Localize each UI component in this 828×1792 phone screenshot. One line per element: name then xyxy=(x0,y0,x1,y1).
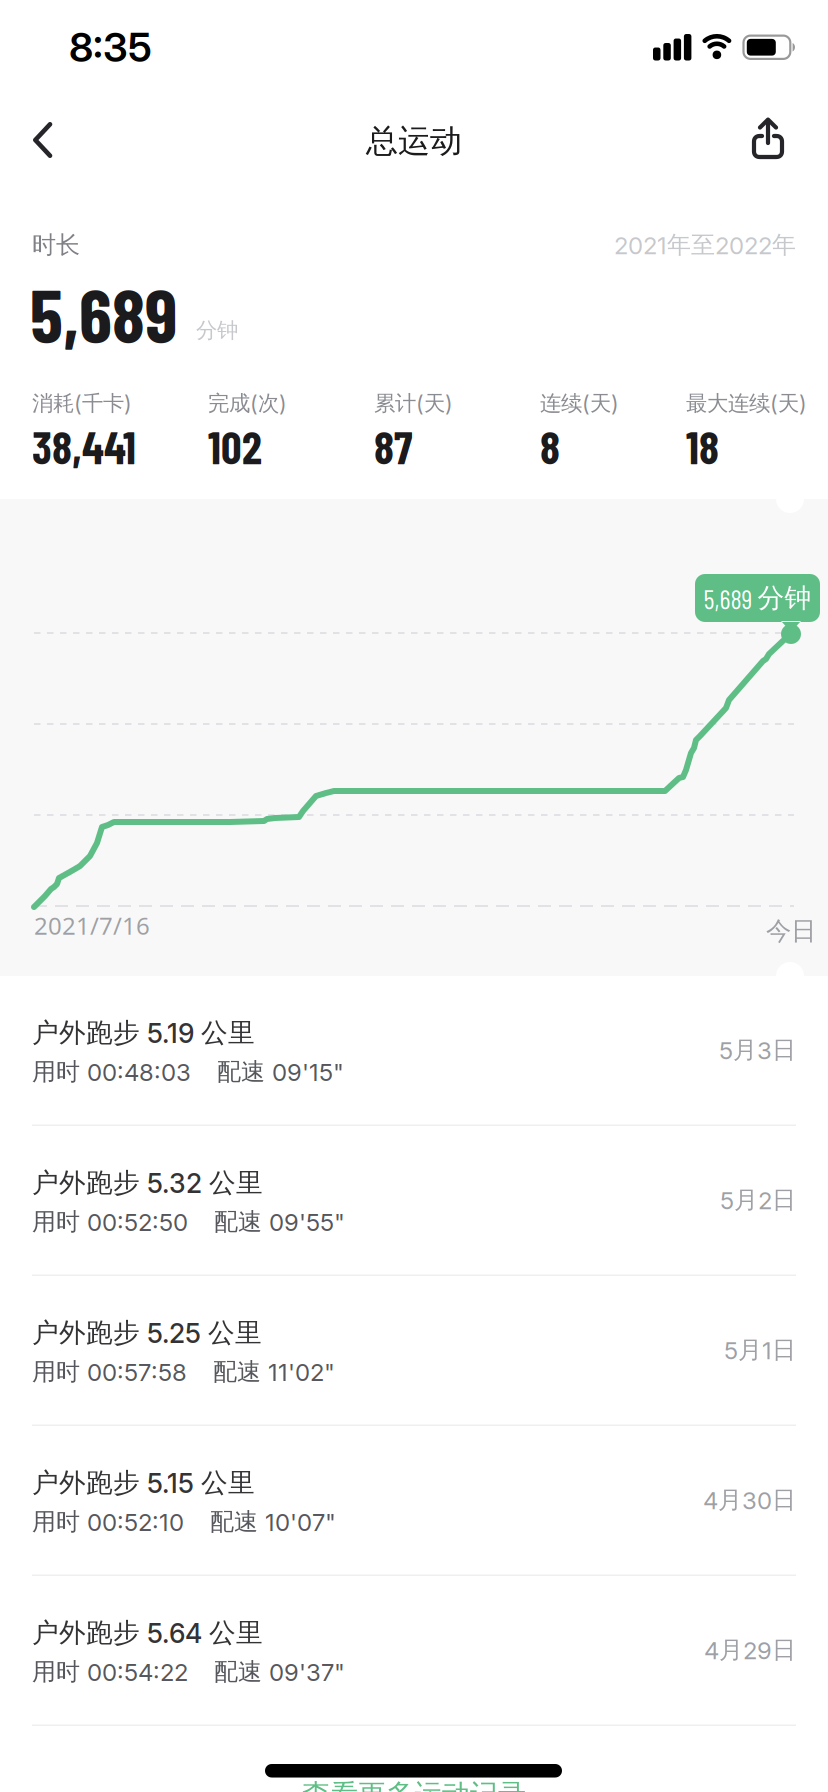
button[interactable]: 查看更多运动记录 xyxy=(264,1777,564,1792)
button[interactable]: 户外跑步 5.15 公里 xyxy=(0,1426,828,1576)
button[interactable]: 户外跑步 5.19 公里 xyxy=(0,976,828,1126)
button[interactable]: 户外跑步 5.32 公里 xyxy=(0,1126,828,1276)
staticText: 4月30日 xyxy=(703,1485,796,1515)
staticText: 连续(天) xyxy=(540,390,619,417)
staticText: 5月3日 xyxy=(719,1035,796,1065)
staticText: 用时 00:52:50 xyxy=(32,1207,188,1237)
staticText: 2021年至2022年 xyxy=(614,230,796,260)
staticText: 时长 xyxy=(32,230,80,260)
staticText: 8 xyxy=(540,419,560,473)
staticText: 用时 00:48:03 xyxy=(32,1057,191,1087)
staticText: 今日 xyxy=(766,915,816,947)
staticText: 用时 00:52:10 xyxy=(32,1507,184,1537)
staticText: 用时 00:57:58 xyxy=(32,1357,187,1387)
staticText: 配速 10'07" xyxy=(210,1507,336,1537)
staticText: 4月29日 xyxy=(704,1635,796,1665)
staticText: 户外跑步 5.19 公里 xyxy=(32,1016,255,1050)
staticText: 5,689 分钟 xyxy=(703,581,811,615)
staticText: 配速 09'55" xyxy=(214,1207,345,1237)
staticText: 户外跑步 5.25 公里 xyxy=(32,1316,262,1350)
button[interactable]: Share xyxy=(740,106,796,171)
staticText: 分钟 xyxy=(196,317,238,344)
staticText: 8:35 xyxy=(69,23,152,71)
staticText: 户外跑步 5.15 公里 xyxy=(32,1466,255,1500)
staticText: 配速 09'37" xyxy=(214,1657,345,1687)
staticText: 用时 00:54:22 xyxy=(32,1657,188,1687)
staticText: 配速 11'02" xyxy=(213,1357,335,1387)
staticText: 总运动 xyxy=(366,121,462,161)
staticText: 查看更多运动记录 xyxy=(302,1777,526,1792)
staticText: 户外跑步 5.64 公里 xyxy=(32,1616,263,1650)
staticText: 消耗(千卡) xyxy=(32,390,132,417)
staticText: 完成(次) xyxy=(208,390,287,417)
staticText: 5,689 xyxy=(30,268,177,358)
staticText: 18 xyxy=(686,419,719,473)
staticText: 102 xyxy=(208,419,262,473)
staticText: 5月1日 xyxy=(724,1335,796,1365)
staticText: 38,441 xyxy=(32,419,136,473)
staticText: 最大连续(天) xyxy=(686,390,807,417)
staticText: 累计(天) xyxy=(374,390,453,417)
staticText: 5月2日 xyxy=(720,1185,796,1215)
button[interactable]: Back xyxy=(19,108,66,172)
button[interactable]: 户外跑步 5.64 公里 xyxy=(0,1576,828,1726)
staticText: 87 xyxy=(374,419,412,473)
staticText: 2021/7/16 xyxy=(34,909,150,942)
staticText: 户外跑步 5.32 公里 xyxy=(32,1166,263,1200)
staticText: 配速 09'15" xyxy=(217,1057,344,1087)
button[interactable]: 户外跑步 5.25 公里 xyxy=(0,1276,828,1426)
